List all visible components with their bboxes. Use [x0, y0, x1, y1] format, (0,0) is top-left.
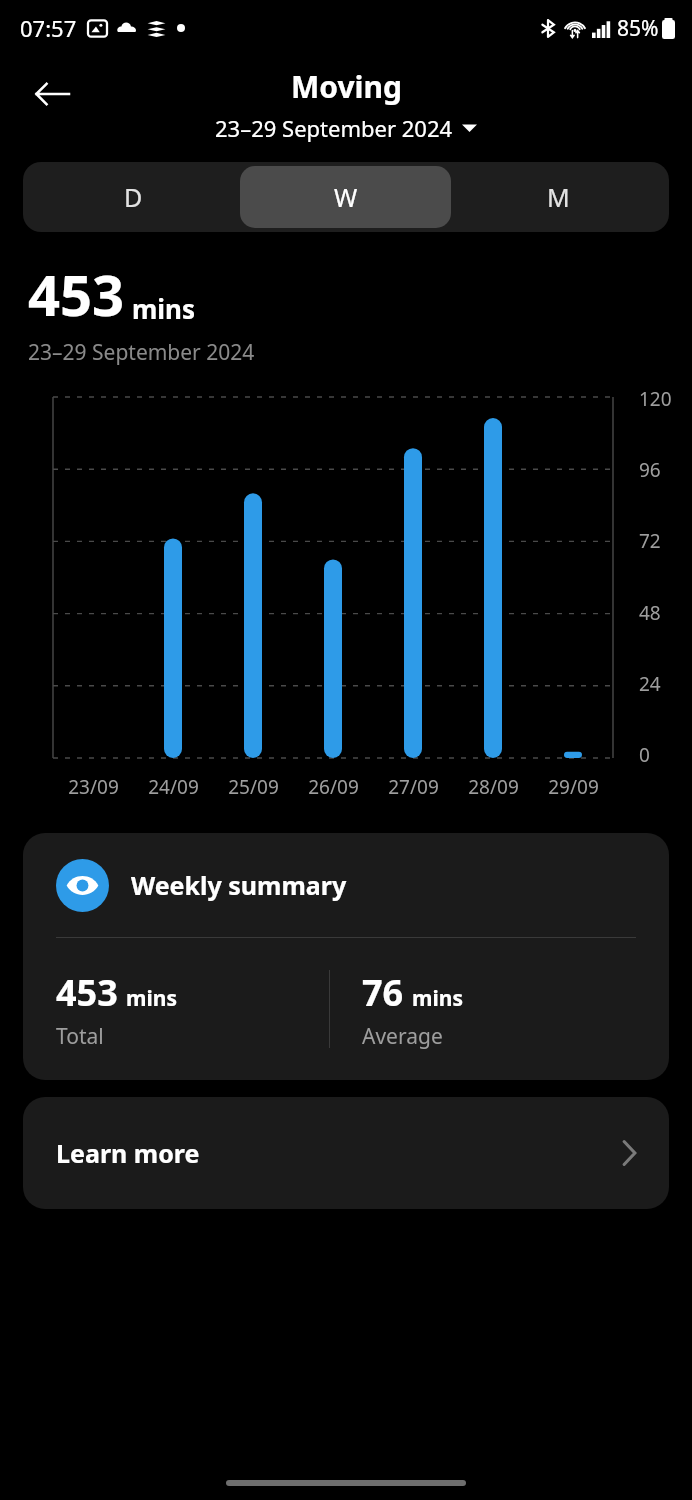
button[interactable]: W [240, 166, 451, 228]
staticText: 24/09 [148, 774, 199, 800]
staticText: 23–29 September 2024 [28, 338, 255, 367]
staticText: W [334, 180, 358, 214]
staticText: 72 [639, 528, 661, 554]
button[interactable]: Learn more [23, 1097, 669, 1209]
staticText: Moving [291, 66, 402, 107]
button[interactable]: M [453, 166, 664, 228]
staticText: 24 [639, 671, 661, 697]
staticText: 120 [639, 386, 672, 412]
staticText: 23–29 September 2024 [215, 113, 453, 143]
staticText: 27/09 [388, 774, 439, 800]
staticText: mins [412, 984, 463, 1013]
staticText: Learn more [56, 1136, 200, 1170]
staticText: 29/09 [548, 774, 599, 800]
staticText: 453 [56, 968, 118, 1017]
staticText: 23/09 [68, 774, 119, 800]
staticText: 07:57 [20, 13, 77, 43]
button[interactable]: D [28, 166, 238, 228]
staticText: 85% [617, 14, 659, 43]
staticText: Weekly summary [131, 868, 347, 902]
staticText: D [124, 180, 143, 214]
staticText: Total [56, 1022, 104, 1051]
staticText: mins [132, 291, 196, 326]
staticText: 0 [639, 742, 650, 768]
button[interactable]: Weekly summary [23, 833, 669, 1080]
button[interactable]: Back [28, 70, 76, 118]
staticText: M [547, 180, 570, 214]
staticText: 25/09 [228, 774, 279, 800]
staticText: 28/09 [468, 774, 519, 800]
staticText: 453 [28, 256, 125, 332]
staticText: 76 [362, 968, 404, 1017]
staticText: Average [362, 1022, 443, 1051]
staticText: mins [126, 984, 177, 1013]
staticText: 48 [639, 600, 661, 626]
button[interactable]: 23–29 September 2024 [215, 113, 477, 143]
staticText: 26/09 [308, 774, 359, 800]
staticText: 96 [639, 457, 661, 483]
